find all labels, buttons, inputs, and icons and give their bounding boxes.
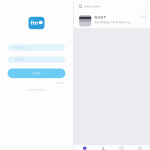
- staticText: fm: [30, 18, 38, 26]
- staticText: 立即登录: [32, 72, 40, 74]
- button[interactable]: Chats: [76, 145, 94, 150]
- staticText: 昨天: [141, 15, 147, 19]
- button[interactable]: 立即登录: [8, 68, 65, 78]
- staticText: 忘记密码?: [56, 81, 65, 84]
- staticText: 请输入用户名: [14, 46, 26, 49]
- button[interactable]: Contacts: [94, 145, 112, 150]
- button[interactable]: Search: [74, 0, 150, 13]
- staticText: 你好呀我是小助手很高兴认识你: [94, 20, 135, 24]
- button[interactable]: 微信助手: [74, 13, 150, 28]
- button[interactable]: Discover: [112, 145, 131, 150]
- staticText: 微信助手: [94, 16, 106, 19]
- button[interactable]: 忘记密码?: [56, 81, 65, 84]
- staticText: 登录即代表同意协议: [27, 89, 45, 91]
- button[interactable]: Me: [131, 145, 149, 150]
- staticText: 搜索聊天记录内容: [84, 5, 100, 8]
- staticText: 请输入密码: [14, 58, 24, 61]
